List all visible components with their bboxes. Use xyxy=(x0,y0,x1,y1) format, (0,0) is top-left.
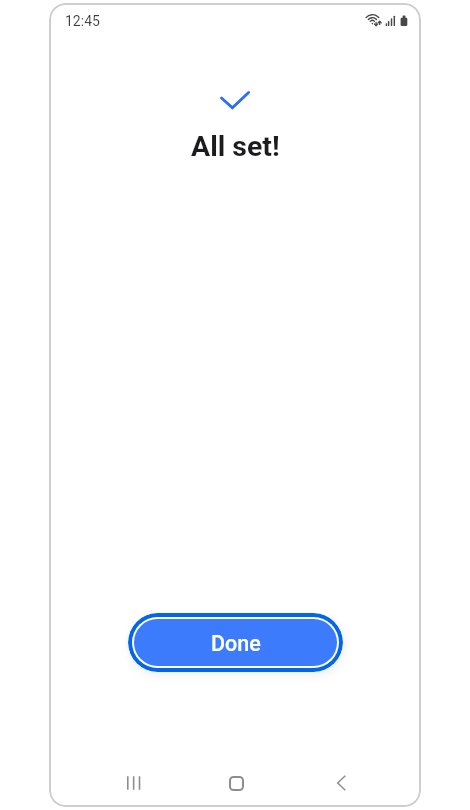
staticText: Done xyxy=(211,631,261,656)
staticText: All set! xyxy=(191,130,280,163)
staticText: 12:45 xyxy=(65,13,100,29)
button[interactable]: Home xyxy=(212,759,260,807)
button[interactable]: Recent apps xyxy=(110,759,158,807)
button[interactable]: Back xyxy=(317,759,365,807)
button[interactable]: Done xyxy=(128,613,343,672)
